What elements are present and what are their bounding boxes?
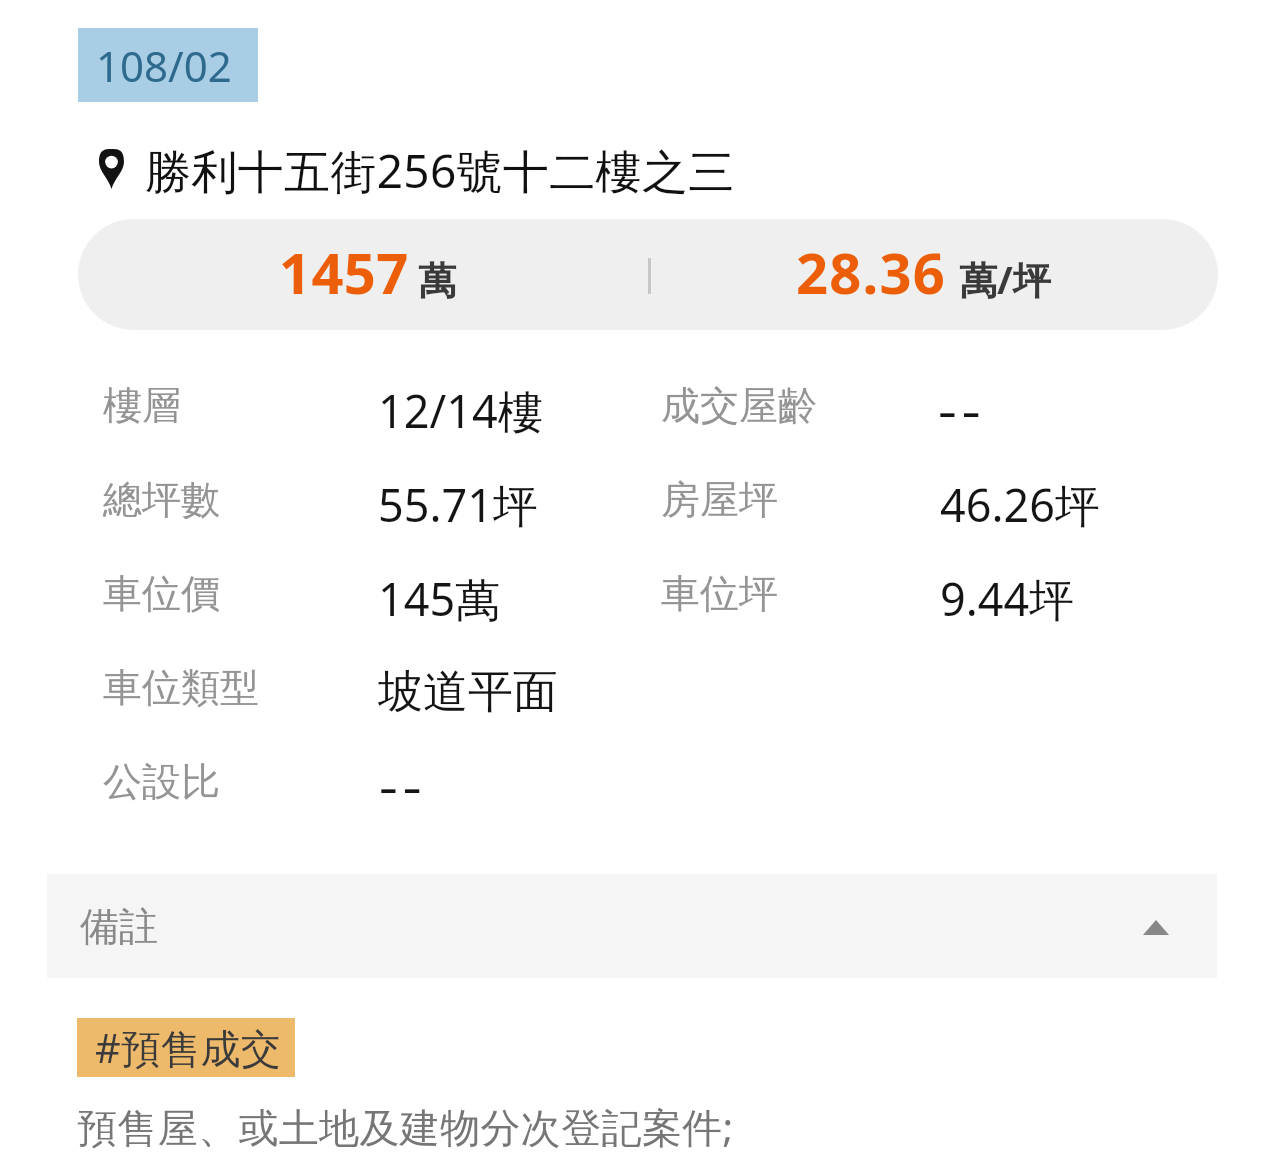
staticText: 108/02: [96, 37, 232, 94]
staticText: 房屋坪: [661, 475, 778, 524]
staticText: 28.36: [796, 234, 946, 310]
other: Collapse remarks: [1143, 920, 1169, 935]
staticText: 樓層: [103, 381, 181, 430]
staticText: 46.26坪: [940, 474, 1101, 535]
staticText: 9.44坪: [940, 568, 1075, 629]
staticText: 成交屋齡: [661, 381, 817, 430]
staticText: 總坪數: [103, 475, 220, 524]
staticText: 坡道平面: [378, 664, 558, 721]
staticText: 萬/坪: [959, 253, 1051, 305]
staticText: 1457: [279, 234, 409, 310]
staticText: 12/14樓: [378, 380, 543, 441]
staticText: 車位坪: [661, 569, 778, 618]
button[interactable]: Location: [87, 134, 751, 204]
staticText: #預售成交: [95, 1020, 281, 1075]
staticText: --: [374, 753, 422, 818]
button[interactable]: #預售成交: [77, 1018, 295, 1077]
staticText: 勝利十五街256號十二樓之三: [145, 139, 735, 202]
staticText: 車位價: [103, 569, 220, 618]
staticText: 備註: [80, 902, 158, 951]
staticText: --: [933, 377, 981, 442]
staticText: 預售屋、或土地及建物分次登記案件;: [77, 1099, 734, 1154]
other: Location: [99, 149, 124, 189]
staticText: 55.71坪: [378, 474, 539, 535]
staticText: 車位類型: [103, 663, 259, 712]
button[interactable]: 備註: [47, 874, 1217, 978]
staticText: 公設比: [103, 757, 220, 806]
staticText: 萬: [418, 257, 456, 305]
staticText: 145萬: [378, 568, 501, 629]
